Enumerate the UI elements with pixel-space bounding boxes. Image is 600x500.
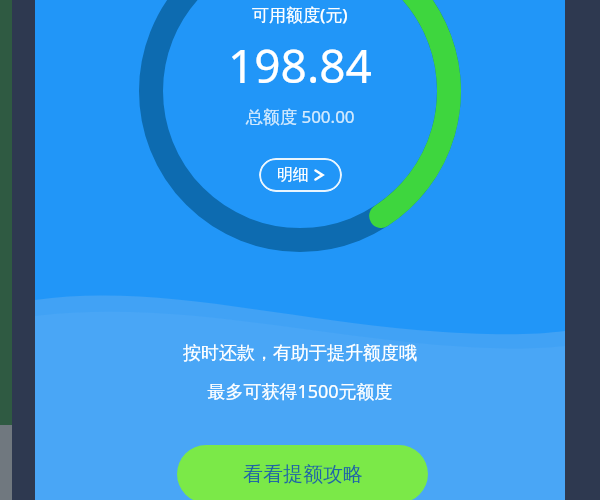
staticText: 按时还款，有助于提升额度哦 xyxy=(183,342,417,365)
staticText: 最多可获得1500元额度 xyxy=(207,379,393,404)
button[interactable]: 看看提额攻略 xyxy=(177,445,428,500)
staticText: 可用额度(元) xyxy=(252,3,348,26)
staticText: 明细 xyxy=(277,165,309,185)
staticText: 198.84 xyxy=(228,34,372,90)
staticText: 看看提额攻略 xyxy=(243,462,363,487)
staticText: 总额度 500.00 xyxy=(246,105,355,128)
button[interactable]: 明细 xyxy=(259,158,342,192)
